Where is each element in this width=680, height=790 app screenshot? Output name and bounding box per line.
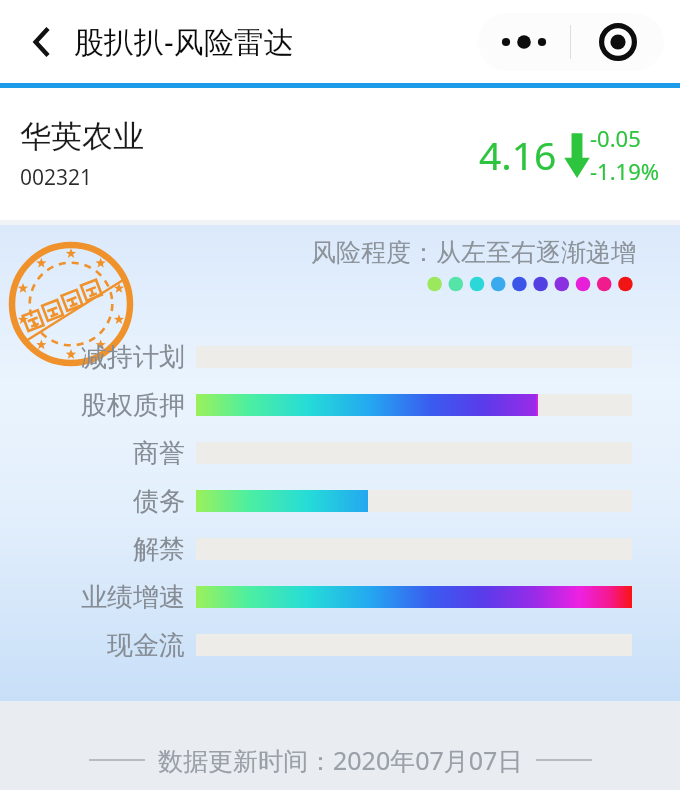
- staticText: 业绩增速: [81, 581, 185, 614]
- staticText: -0.05: [590, 123, 641, 153]
- staticText: 债务: [133, 485, 185, 518]
- staticText: 华英农业: [20, 117, 144, 156]
- staticText: 解禁: [133, 533, 185, 566]
- staticText: 现金流: [107, 629, 185, 662]
- button[interactable]: 业绩增速: [0, 573, 680, 621]
- button[interactable]: Close mini program: [571, 13, 664, 71]
- button[interactable]: 商誉: [0, 429, 680, 477]
- staticText: 002321: [20, 163, 93, 192]
- staticText: 数据更新时间：2020年07月07日: [158, 743, 523, 777]
- button[interactable]: 解禁: [0, 525, 680, 573]
- button[interactable]: 减持计划: [0, 333, 680, 381]
- button[interactable]: 现金流: [0, 621, 680, 669]
- staticText: -1.19%: [590, 156, 660, 186]
- staticText: 风险程度：从左至右逐渐递增: [311, 237, 636, 268]
- button[interactable]: More options: [478, 13, 570, 71]
- staticText: 商誉: [133, 437, 185, 470]
- staticText: 股扒扒-风险雷达: [74, 21, 294, 62]
- button[interactable]: Back: [16, 16, 68, 68]
- button[interactable]: 股权质押: [0, 381, 680, 429]
- button[interactable]: 债务: [0, 477, 680, 525]
- staticText: 减持计划: [81, 341, 185, 374]
- staticText: 4.16: [479, 128, 557, 181]
- staticText: 股权质押: [81, 389, 185, 422]
